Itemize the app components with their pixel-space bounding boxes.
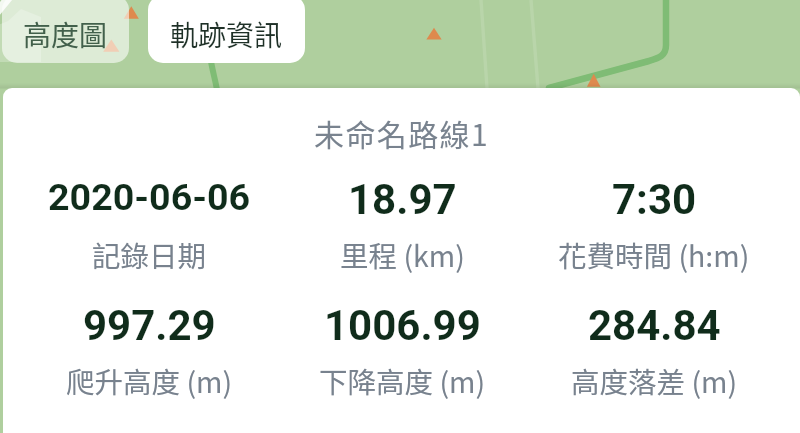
- staticText: 軌跡資訊: [170, 14, 283, 55]
- staticText: 爬升高度 (m): [66, 360, 233, 401]
- staticText: 里程 (km): [340, 234, 465, 275]
- staticText: 1006.99: [324, 301, 481, 350]
- staticText: 下降高度 (m): [319, 360, 486, 401]
- staticText: 記錄日期: [92, 234, 207, 275]
- staticText: 997.29: [83, 301, 216, 350]
- staticText: 18.97: [348, 175, 457, 224]
- staticText: 7:30: [612, 175, 697, 224]
- staticText: 2020-06-06: [48, 175, 251, 219]
- button[interactable]: 高度圖: [2, 0, 129, 63]
- staticText: 未命名路線1: [3, 111, 800, 154]
- staticText: 花費時間 (h:m): [558, 234, 750, 275]
- staticText: 高度圖: [23, 14, 108, 55]
- button[interactable]: 軌跡資訊: [148, 0, 305, 63]
- staticText: 284.84: [588, 301, 721, 350]
- staticText: 高度落差 (m): [571, 360, 738, 401]
